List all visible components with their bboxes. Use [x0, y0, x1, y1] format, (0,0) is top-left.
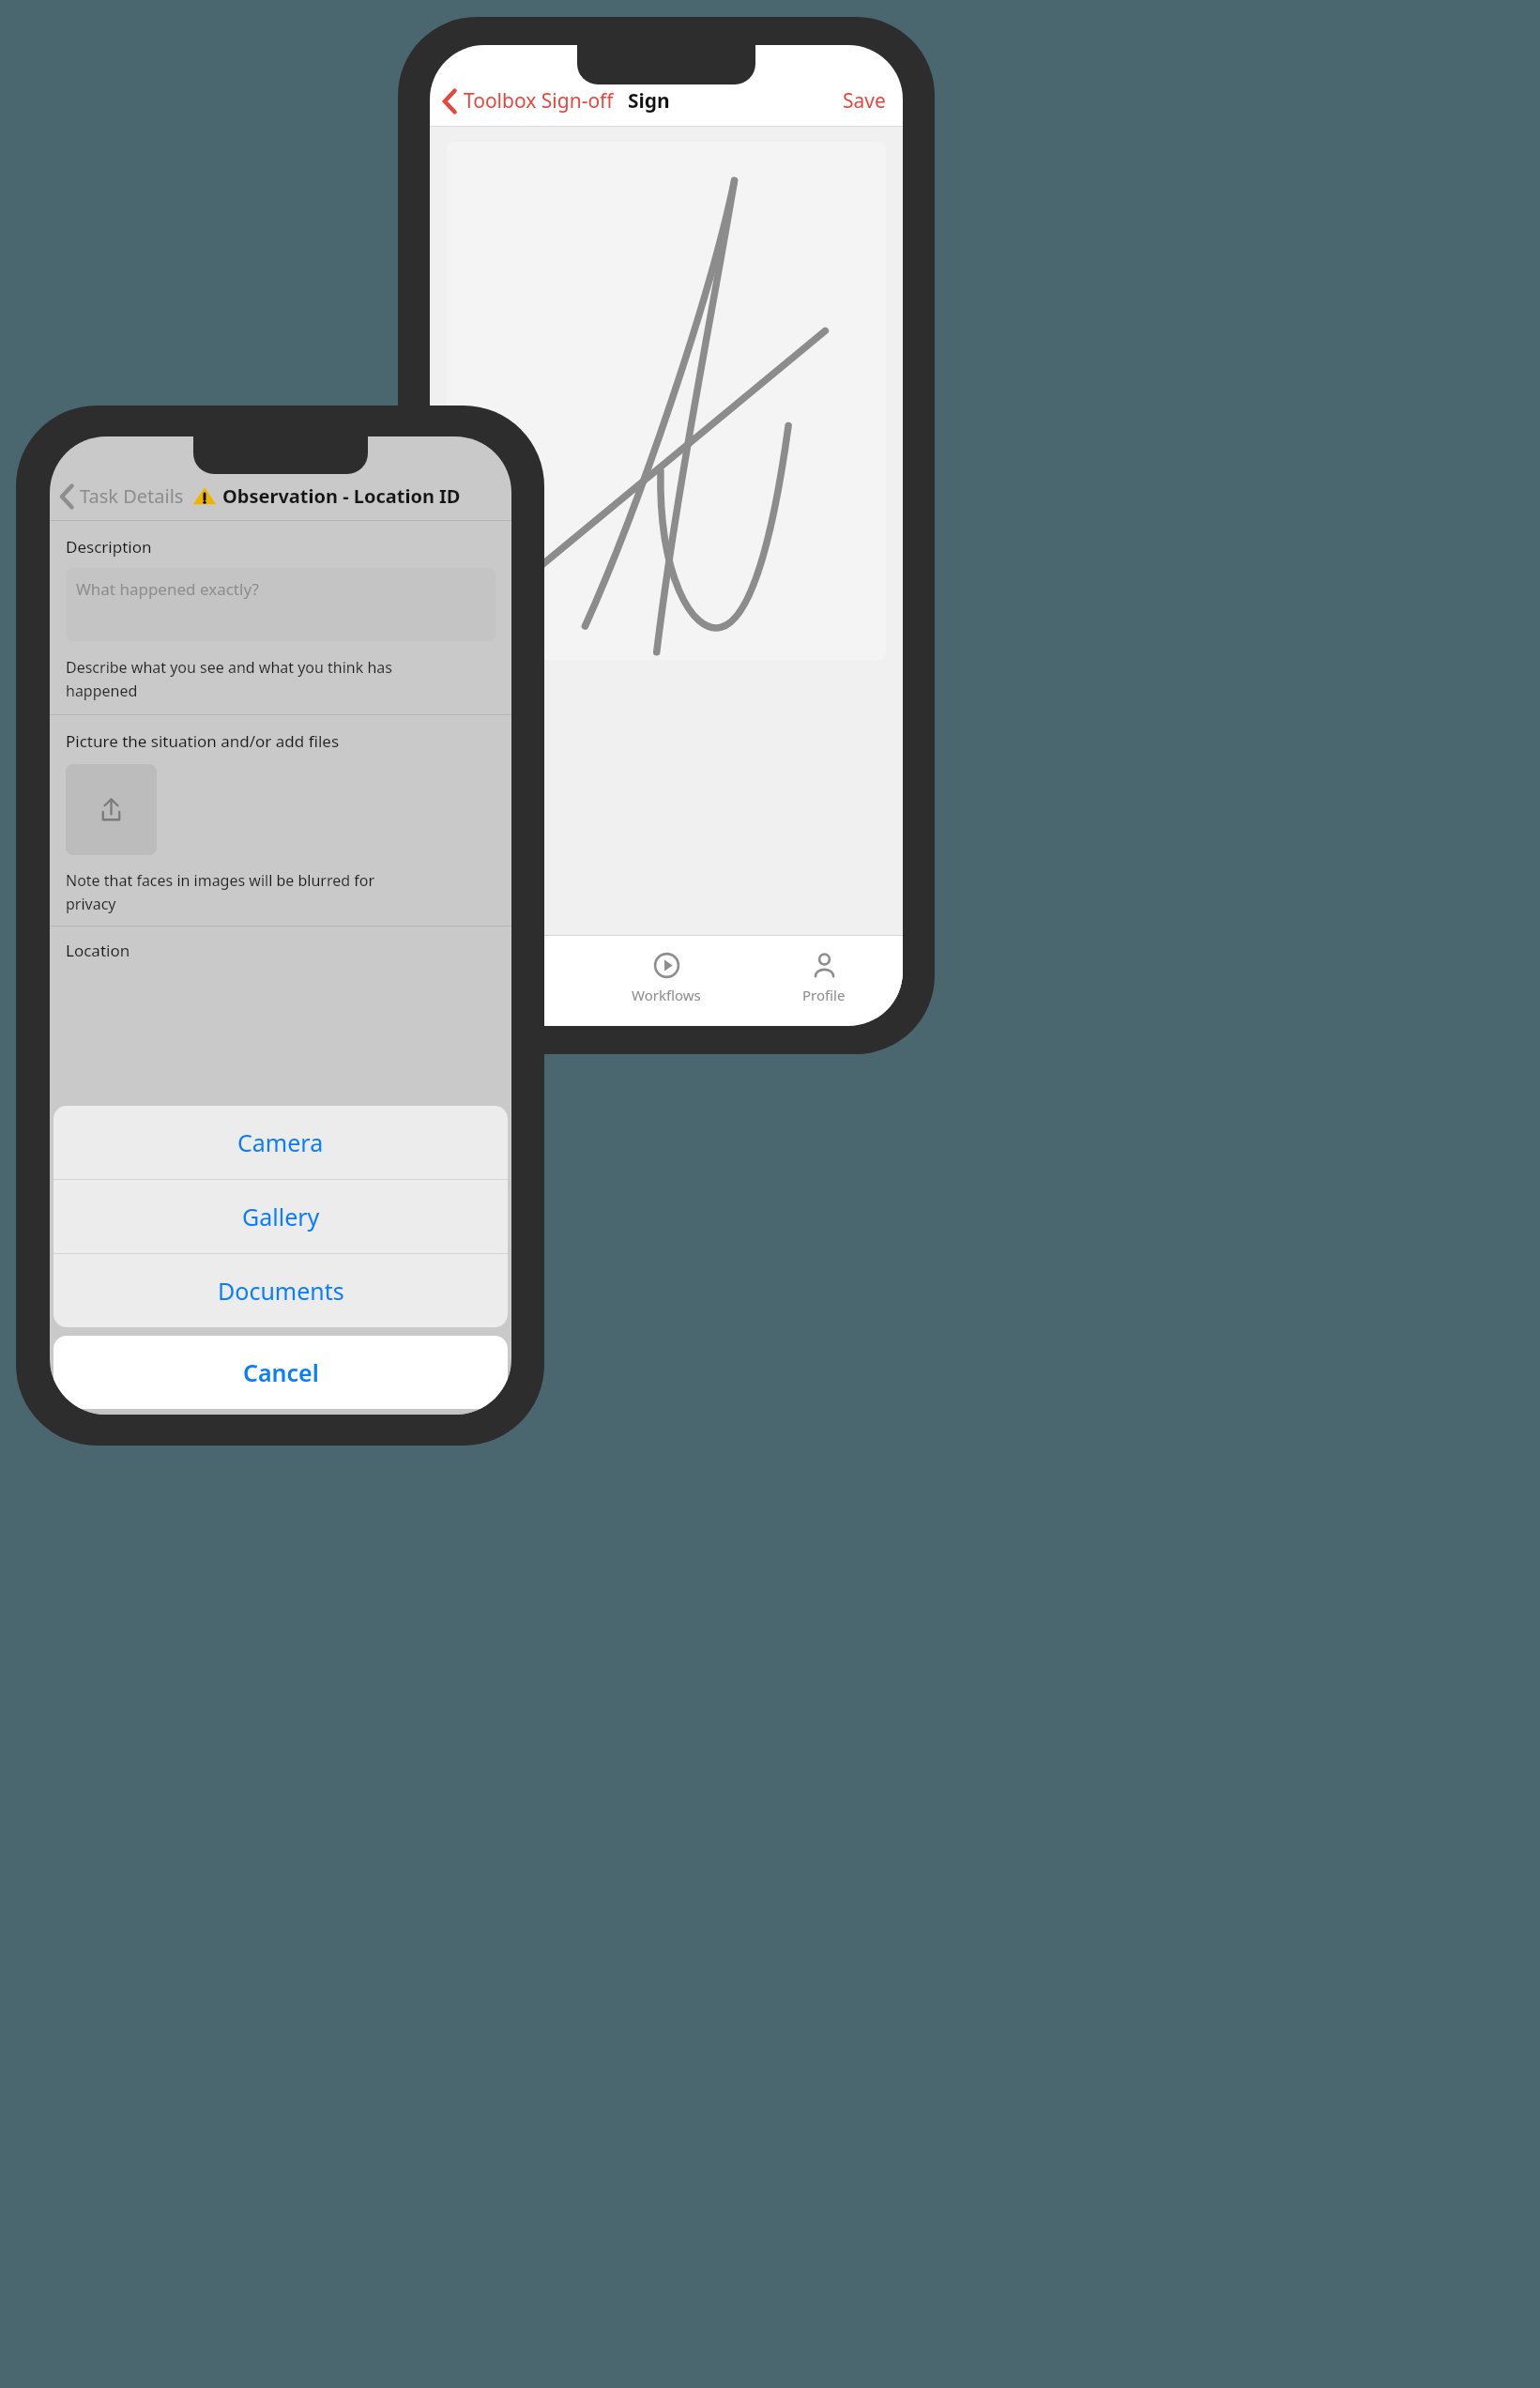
button[interactable]: Signature pad: [447, 142, 886, 660]
staticText: What happened exactly?: [76, 578, 259, 600]
button[interactable]: Profile: [745, 936, 903, 1018]
staticText: Task Details: [80, 483, 184, 509]
button[interactable]: Tasks: [165, 1366, 281, 1415]
button[interactable]: Gallery: [53, 1180, 508, 1253]
staticText: Tasks: [491, 986, 526, 1004]
staticText: Picture the situation and/or add files: [66, 730, 340, 752]
staticText: Documents: [218, 1275, 344, 1307]
button[interactable]: Workflows: [587, 936, 745, 1018]
button[interactable]: Tasks: [430, 936, 587, 1018]
staticText: Describe what you see and what you think…: [66, 657, 392, 700]
staticText: Gallery: [242, 1201, 320, 1232]
button[interactable]: Workflows: [281, 1366, 396, 1415]
button[interactable]: Save: [839, 84, 890, 118]
staticText: Toolbox Sign-off: [464, 87, 614, 115]
button[interactable]: Documents: [53, 1254, 508, 1327]
staticText: Location: [66, 940, 130, 961]
staticText: Workflows: [306, 1394, 371, 1412]
staticText: Description: [66, 536, 152, 558]
button[interactable]: Cancel: [53, 1336, 508, 1409]
button[interactable]: Camera: [53, 1106, 508, 1179]
staticText: Save: [843, 87, 886, 115]
staticText: Profile: [802, 986, 846, 1004]
staticText: Sign: [628, 87, 670, 115]
button[interactable]: Toolbox Sign-off: [443, 87, 614, 115]
staticText: Cancel: [243, 1356, 319, 1388]
button[interactable]: Profile: [396, 1366, 511, 1415]
staticText: Profile: [434, 1394, 474, 1412]
button[interactable]: Home: [50, 1366, 165, 1415]
staticText: Home: [89, 1394, 127, 1412]
staticText: Note that faces in images will be blurre…: [66, 870, 375, 913]
button[interactable]: Task Details: [60, 483, 184, 509]
staticText: Camera: [237, 1126, 324, 1158]
staticText: Observation - Location ID: [222, 483, 461, 509]
button[interactable]: What happened exactly?: [66, 568, 496, 641]
staticText: Workflows: [632, 986, 701, 1004]
staticText: Tasks: [206, 1394, 240, 1412]
button[interactable]: Upload file: [66, 764, 157, 855]
